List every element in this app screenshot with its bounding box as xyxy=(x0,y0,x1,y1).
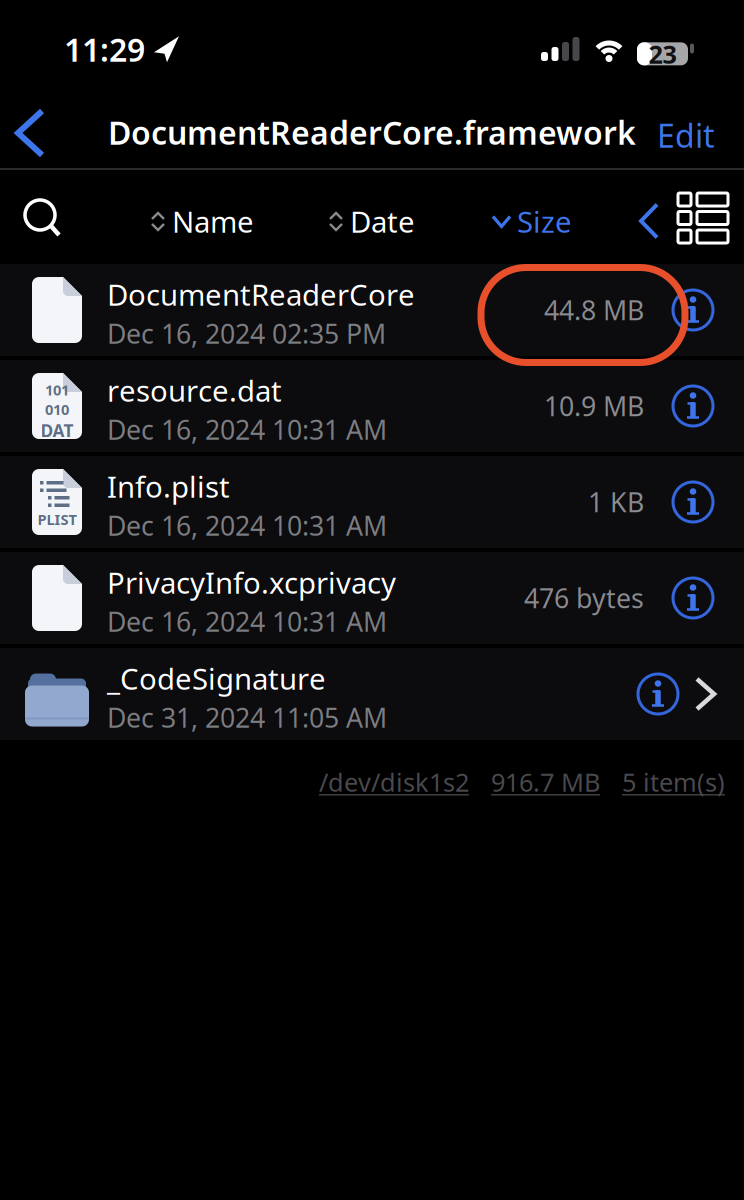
button[interactable]: 101 xyxy=(0,360,744,452)
staticText: 1 KB xyxy=(588,484,644,520)
staticText: 916.7 MB xyxy=(491,765,600,799)
button[interactable]: Info xyxy=(671,576,715,620)
button[interactable]: Info xyxy=(671,480,715,524)
staticText: resource.dat xyxy=(107,371,282,410)
staticText: 23 xyxy=(648,37,676,71)
staticText: DocumentReaderCore.framework xyxy=(108,111,636,153)
button[interactable]: Back xyxy=(8,105,52,161)
button[interactable]: Search xyxy=(20,196,64,244)
staticText: Dec 16, 2024 02:35 PM xyxy=(107,316,386,351)
button[interactable]: Date xyxy=(330,202,415,241)
staticText: PLIST xyxy=(37,509,76,529)
staticText: Date xyxy=(350,202,415,241)
staticText: 010 xyxy=(45,399,69,419)
staticText: Dec 16, 2024 10:31 AM xyxy=(107,508,387,543)
staticText: PrivacyInfo.xcprivacy xyxy=(107,563,396,602)
button[interactable]: /dev/disk1s2 xyxy=(319,765,469,799)
button[interactable]: Edit xyxy=(657,114,715,156)
button[interactable]: Info xyxy=(671,288,715,332)
button[interactable]: Collapse sort options xyxy=(634,199,664,243)
staticText: _CodeSignature xyxy=(107,659,326,698)
staticText: Info.plist xyxy=(107,467,230,506)
button[interactable]: Info xyxy=(636,672,680,716)
button[interactable]: View options xyxy=(676,194,730,242)
button[interactable]: Name xyxy=(152,202,254,241)
button[interactable]: 5 item(s) xyxy=(622,765,725,799)
staticText: Dec 31, 2024 11:05 AM xyxy=(107,700,387,735)
button[interactable]: PrivacyInfo.xcprivacy xyxy=(0,552,744,644)
staticText: Size xyxy=(517,202,572,241)
staticText: 44.8 MB xyxy=(544,292,644,328)
staticText: 101 xyxy=(45,380,69,399)
staticText: /dev/disk1s2 xyxy=(319,765,469,799)
button[interactable]: 916.7 MB xyxy=(491,765,600,799)
staticText: DocumentReaderCore xyxy=(107,275,415,314)
staticText: 476 bytes xyxy=(524,580,644,616)
staticText: 5 item(s) xyxy=(622,765,725,799)
staticText: Dec 16, 2024 10:31 AM xyxy=(107,604,387,639)
staticText: Edit xyxy=(657,114,715,156)
button[interactable]: _CodeSignature xyxy=(0,648,744,740)
staticText: DAT xyxy=(40,419,73,442)
staticText: 10.9 MB xyxy=(544,388,644,424)
button[interactable]: DocumentReaderCore xyxy=(0,264,744,356)
button[interactable]: Size xyxy=(493,202,572,241)
staticText: Name xyxy=(172,202,254,241)
button[interactable]: PLIST xyxy=(0,456,744,548)
staticText: Dec 16, 2024 10:31 AM xyxy=(107,412,387,447)
staticText: 11:29 xyxy=(64,28,145,70)
button[interactable]: Info xyxy=(671,384,715,428)
